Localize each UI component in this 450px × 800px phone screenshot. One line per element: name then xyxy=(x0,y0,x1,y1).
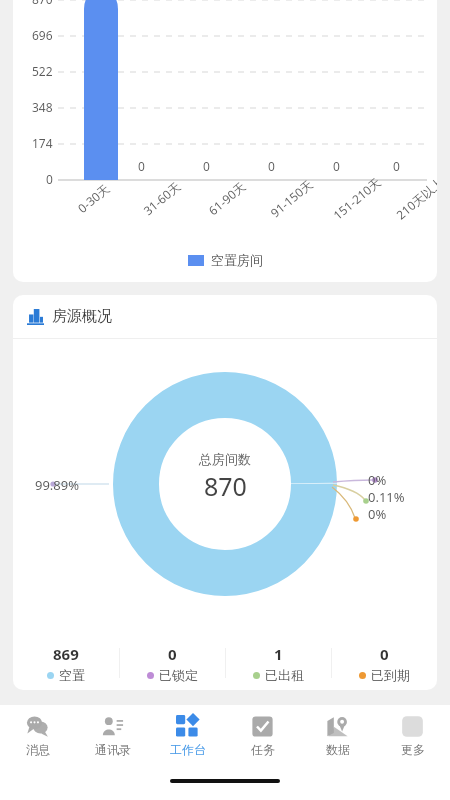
staticText: 已到期 xyxy=(371,667,410,683)
staticText: 0 xyxy=(168,644,177,664)
staticText: 通讯录 xyxy=(95,742,131,757)
staticText: 348 xyxy=(32,99,53,115)
staticText: 空置 xyxy=(59,667,85,683)
staticText: 0% xyxy=(368,505,387,523)
staticText: 1 xyxy=(274,644,283,664)
staticText: 0 xyxy=(138,158,145,174)
staticText: 0 xyxy=(268,158,275,174)
staticText: 174 xyxy=(32,135,53,151)
staticText: 总房间数 xyxy=(199,451,251,467)
staticText: 0 xyxy=(46,171,53,187)
staticText: 工作台 xyxy=(170,742,206,757)
staticText: 0 xyxy=(333,158,340,174)
staticText: 已出租 xyxy=(265,667,304,683)
staticText: 空置房间 xyxy=(211,252,263,268)
staticText: 任务 xyxy=(251,742,275,757)
staticText: 数据 xyxy=(326,742,350,757)
staticText: 870 xyxy=(204,469,247,503)
staticText: 0 xyxy=(393,158,400,174)
staticText: 0% xyxy=(368,471,387,489)
staticText: 0 xyxy=(380,644,389,664)
staticText: 0-30天 xyxy=(74,180,113,216)
button[interactable]: 更多 xyxy=(375,705,450,767)
staticText: 869 xyxy=(53,644,79,664)
staticText: 0.11% xyxy=(368,488,405,506)
staticText: 151-210天 xyxy=(330,173,384,223)
button[interactable]: 869 xyxy=(13,639,119,687)
button[interactable]: 0 xyxy=(331,639,437,687)
staticText: 91-150天 xyxy=(267,175,316,220)
button[interactable]: 1 xyxy=(225,639,331,687)
staticText: 99.89% xyxy=(35,476,80,494)
staticText: 696 xyxy=(32,27,53,43)
button[interactable]: 数据 xyxy=(300,705,375,767)
staticText: 更多 xyxy=(401,742,425,757)
staticText: 61-90天 xyxy=(205,178,249,218)
staticText: 870 xyxy=(32,0,53,7)
staticText: 房源概况 xyxy=(52,307,112,326)
staticText: 522 xyxy=(32,63,53,79)
button[interactable]: 消息 xyxy=(0,705,75,767)
staticText: 31-60天 xyxy=(140,178,184,218)
button[interactable]: 工作台 xyxy=(150,705,225,767)
staticText: 0 xyxy=(203,158,210,174)
button[interactable]: 0 xyxy=(119,639,225,687)
staticText: 已锁定 xyxy=(159,667,198,683)
button[interactable]: 通讯录 xyxy=(75,705,150,767)
button[interactable]: 任务 xyxy=(225,705,300,767)
staticText: 消息 xyxy=(26,742,50,757)
staticText: 210天以上 xyxy=(392,174,437,222)
